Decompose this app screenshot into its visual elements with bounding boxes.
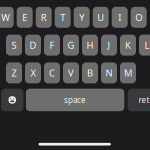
staticText: W [1,11,10,24]
staticText: U [97,11,104,24]
staticText: Z [11,66,16,79]
button[interactable]: J [101,35,117,56]
button[interactable]: D [25,35,41,56]
button[interactable]: Emoji [1,89,23,111]
staticText: S [11,39,16,51]
button[interactable]: I [112,7,128,28]
staticText: J [107,39,110,51]
staticText: V [68,66,74,79]
button[interactable]: L [139,35,150,56]
staticText: R [41,11,47,24]
button[interactable]: Z [6,62,22,83]
button[interactable]: T [55,7,71,28]
staticText: B [87,66,93,79]
button[interactable]: W [0,7,14,28]
staticText: M [124,66,132,79]
button[interactable]: O [131,7,147,28]
staticText: K [125,39,131,51]
staticText: D [29,39,36,51]
staticText: F [49,39,54,51]
button[interactable]: N [101,62,117,83]
staticText: G [67,39,74,51]
button[interactable]: K [120,35,136,56]
staticText: I [118,11,121,24]
staticText: L [144,39,149,51]
button[interactable]: S [6,35,22,56]
staticText: Y [79,11,84,24]
button[interactable]: V [63,62,79,83]
button[interactable]: U [93,7,109,28]
button[interactable]: Y [74,7,90,28]
button[interactable]: M [120,62,136,83]
staticText: space [64,94,86,105]
staticText: H [86,39,93,51]
button[interactable]: F [44,35,60,56]
button[interactable]: space [26,89,124,111]
staticText: C [49,66,55,79]
staticText: return [139,94,150,105]
button[interactable]: E [17,7,33,28]
button[interactable]: X [25,62,41,83]
button[interactable]: H [82,35,98,56]
staticText: N [105,66,112,79]
staticText: T [60,11,65,24]
button[interactable]: C [44,62,60,83]
button[interactable]: G [63,35,79,56]
button[interactable]: B [82,62,98,83]
button[interactable]: R [36,7,52,28]
button[interactable]: return [128,89,150,111]
staticText: E [22,11,27,24]
staticText: X [30,66,35,79]
staticText: O [135,11,142,24]
